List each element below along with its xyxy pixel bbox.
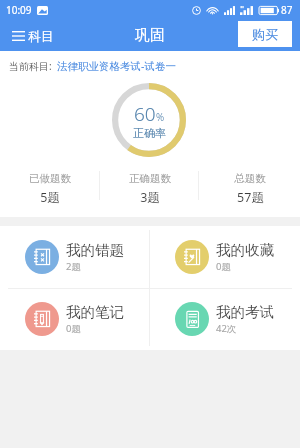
staticText: 5题: [40, 189, 60, 206]
staticText: 科目: [28, 28, 54, 44]
staticText: 10:09: [6, 3, 32, 17]
staticText: 87: [281, 3, 293, 17]
staticText: %: [156, 110, 165, 124]
staticText: 60: [134, 101, 156, 127]
staticText: 2题: [66, 260, 81, 273]
staticText: 0题: [66, 322, 81, 335]
staticText: 42次: [216, 322, 237, 335]
staticText: 3题: [140, 189, 160, 206]
staticText: 57题: [237, 189, 264, 206]
button[interactable]: 我的考试: [150, 288, 300, 350]
staticText: 法律职业资格考试-试卷一: [57, 59, 176, 73]
staticText: 正确率: [133, 126, 166, 140]
button[interactable]: 我的笔记: [0, 288, 150, 350]
button[interactable]: 购买: [238, 21, 292, 47]
staticText: 当前科目:: [9, 59, 52, 73]
staticText: 总题数: [234, 172, 266, 185]
staticText: 我的收藏: [216, 241, 274, 259]
staticText: 0题: [216, 260, 231, 273]
staticText: 我的错题: [66, 241, 124, 259]
button[interactable]: 科目: [0, 20, 62, 51]
staticText: 巩固: [135, 26, 165, 45]
staticText: 我的笔记: [66, 303, 124, 321]
staticText: 购买: [252, 26, 278, 42]
staticText: 我的考试: [216, 303, 274, 321]
button[interactable]: 我的错题: [0, 226, 150, 288]
button[interactable]: 我的收藏: [150, 226, 300, 288]
staticText: 已做题数: [29, 172, 71, 185]
staticText: 正确题数: [129, 172, 171, 185]
